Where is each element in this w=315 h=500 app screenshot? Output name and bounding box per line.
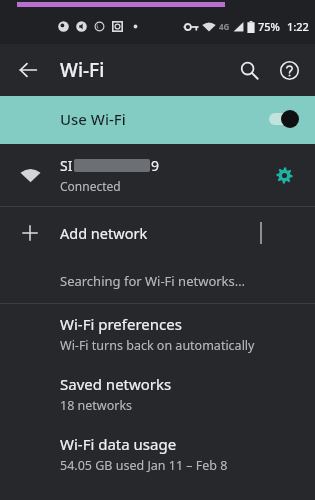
button[interactable]: Use Wi-Fi	[0, 96, 315, 141]
staticText: 54.05 GB used Jan 11 – Feb 8	[60, 457, 228, 474]
staticText: Wi-Fi turns back on automatically	[60, 337, 255, 354]
staticText: Saved networks	[60, 374, 172, 394]
staticText: 4G	[219, 21, 230, 32]
staticText: Wi-Fi data usage	[60, 434, 177, 454]
staticText: 75%	[258, 19, 280, 34]
staticText: Wi-Fi preferences	[60, 314, 182, 334]
button[interactable]: Add network	[0, 207, 315, 259]
button[interactable]: Wi-Fi preferences	[0, 304, 315, 364]
staticText: 18 networks	[60, 397, 133, 414]
button[interactable]: Search	[229, 50, 269, 90]
button[interactable]: Wi-Fi data usage	[0, 424, 315, 484]
staticText: Wi-Fi	[60, 57, 105, 83]
staticText: Add network	[60, 223, 148, 243]
button[interactable]: Network settings	[265, 156, 303, 194]
staticText: Searching for Wi-Fi networks…	[60, 272, 246, 290]
staticText: 1:22	[287, 19, 309, 34]
staticText: 9	[151, 156, 160, 175]
staticText: Use Wi-Fi	[60, 109, 126, 129]
button[interactable]: Help	[269, 50, 309, 90]
button[interactable]: Back	[8, 50, 48, 90]
staticText: Connected	[60, 178, 121, 194]
button[interactable]: Saved networks	[0, 364, 315, 424]
staticText: SI	[60, 156, 73, 175]
button[interactable]: SI	[0, 144, 315, 206]
